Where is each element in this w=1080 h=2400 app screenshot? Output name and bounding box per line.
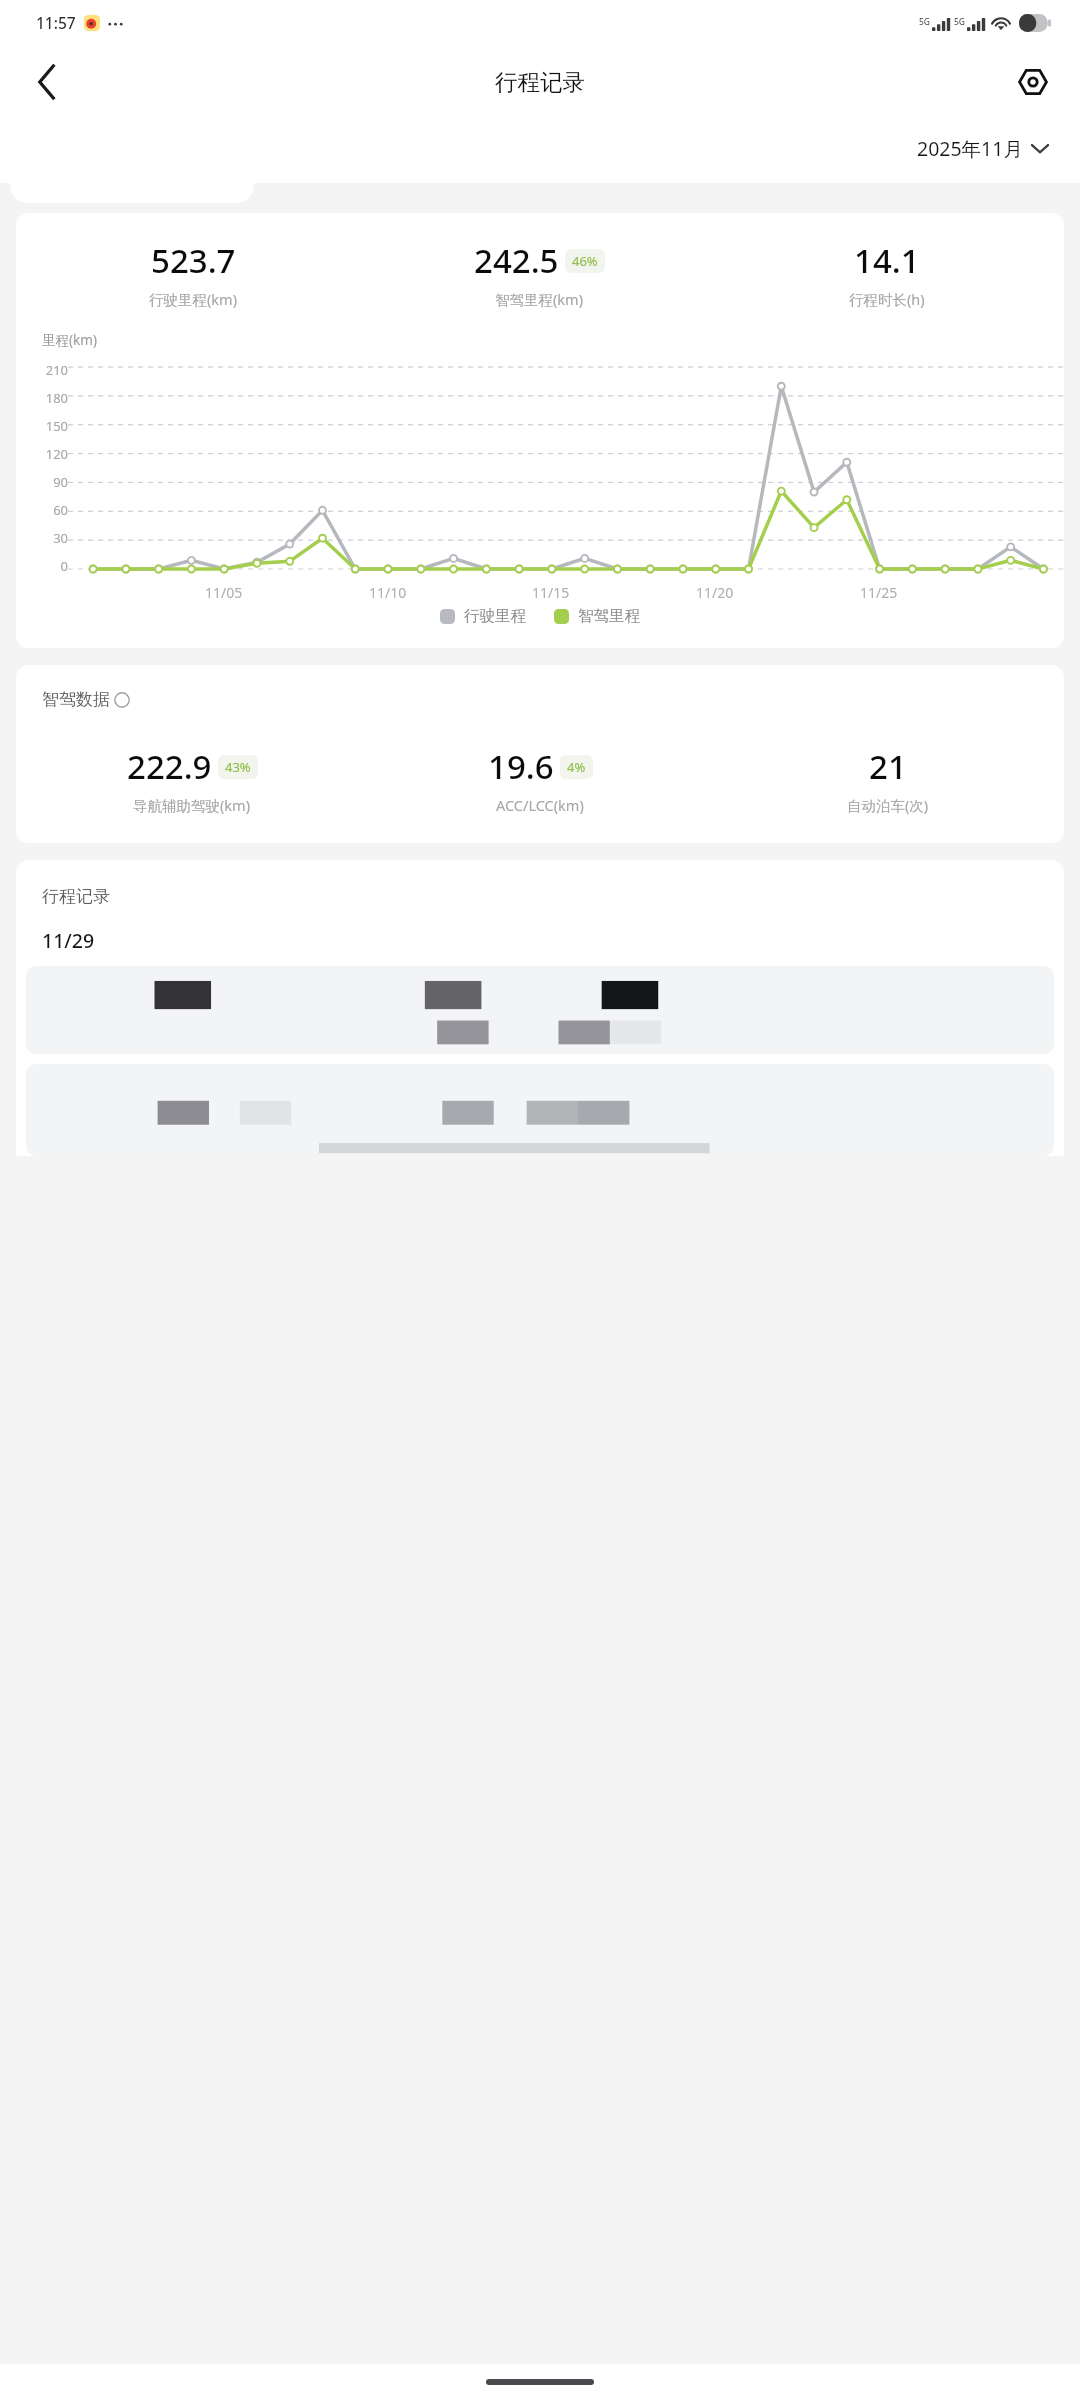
staticText: 自动泊车(次) bbox=[847, 795, 929, 815]
staticText: 46% bbox=[572, 252, 598, 270]
staticText: 11/05 bbox=[205, 583, 243, 602]
staticText: 11:57 bbox=[36, 12, 76, 33]
staticText: 30 bbox=[53, 529, 68, 547]
button[interactable] bbox=[26, 1064, 1054, 1156]
button[interactable]: Settings bbox=[1006, 55, 1060, 109]
button[interactable]: 智驾数据 bbox=[16, 665, 1064, 843]
staticText: 行驶里程(km) bbox=[149, 289, 238, 309]
staticText: 行程记录 bbox=[42, 886, 110, 907]
staticText: 11/10 bbox=[369, 583, 407, 602]
staticText: 222.9 bbox=[127, 744, 212, 789]
staticText: 2025年11月 bbox=[917, 135, 1023, 162]
staticText: 180 bbox=[45, 389, 68, 407]
button[interactable]: 2025年11月 bbox=[911, 129, 1054, 168]
staticText: 242.5 bbox=[474, 238, 559, 283]
staticText: 150 bbox=[45, 417, 68, 435]
staticText: 14.1 bbox=[854, 238, 920, 283]
staticText: 210 bbox=[45, 361, 68, 379]
staticText: 523.7 bbox=[151, 238, 236, 283]
staticText: 智驾数据 bbox=[42, 689, 110, 710]
staticText: 4% bbox=[567, 758, 586, 776]
button[interactable] bbox=[26, 966, 1054, 1054]
staticText: 导航辅助驾驶(km) bbox=[133, 795, 251, 815]
staticText: 43% bbox=[225, 758, 251, 776]
staticText: 90 bbox=[53, 473, 68, 491]
staticText: 里程(km) bbox=[42, 331, 97, 349]
staticText: 5G bbox=[954, 16, 966, 28]
button[interactable]: 523.7 bbox=[16, 213, 1064, 648]
staticText: 21 bbox=[869, 744, 907, 789]
staticText: 120 bbox=[45, 445, 68, 463]
staticText: ACC/LCC(km) bbox=[496, 795, 584, 815]
staticText: 5G bbox=[919, 16, 931, 28]
staticText: 0 bbox=[60, 557, 68, 575]
staticText: 11/25 bbox=[860, 583, 898, 602]
staticText: 19.6 bbox=[488, 744, 554, 789]
staticText: 60 bbox=[53, 501, 68, 519]
staticText: 行驶里程 bbox=[464, 606, 526, 626]
button[interactable]: Back bbox=[20, 55, 74, 109]
staticText: 11/29 bbox=[42, 927, 95, 954]
staticText: 行程时长(h) bbox=[849, 289, 925, 309]
staticText: 智驾里程(km) bbox=[495, 289, 584, 309]
staticText: 11/20 bbox=[696, 583, 734, 602]
staticText: 智驾里程 bbox=[578, 606, 640, 626]
staticText: 11/15 bbox=[532, 583, 570, 602]
staticText: 行程记录 bbox=[495, 68, 585, 96]
